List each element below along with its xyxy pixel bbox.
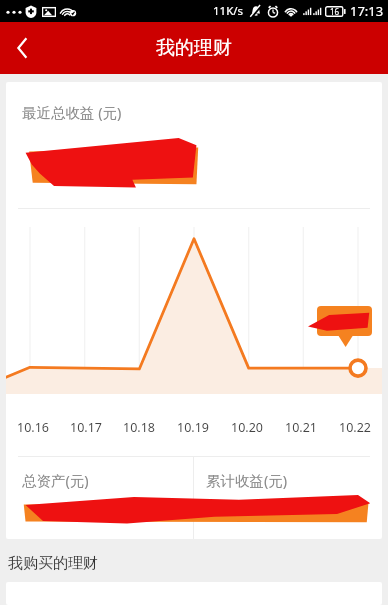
staticText: 10.21 <box>285 419 317 436</box>
staticText: 10.19 <box>177 419 209 436</box>
staticText: 我的理财 <box>156 36 232 60</box>
button[interactable]: 累计收益(元) <box>194 457 382 539</box>
staticText: 11K/s <box>213 3 244 19</box>
staticText: 10.17 <box>70 419 102 436</box>
staticText: 总资产(元) <box>22 470 89 490</box>
staticText: 10.16 <box>17 419 49 436</box>
button[interactable]: Back <box>0 22 44 74</box>
staticText: 我购买的理财 <box>8 554 98 573</box>
staticText: 16 <box>330 6 340 17</box>
staticText: 10.20 <box>231 419 263 436</box>
staticText: 10.18 <box>123 419 155 436</box>
staticText: 累计收益(元) <box>206 470 288 490</box>
staticText: 17:13 <box>350 2 384 20</box>
staticText: 10.22 <box>339 419 371 436</box>
staticText: 最近总收益 (元) <box>22 102 122 122</box>
button[interactable]: 总资产(元) <box>6 457 193 539</box>
